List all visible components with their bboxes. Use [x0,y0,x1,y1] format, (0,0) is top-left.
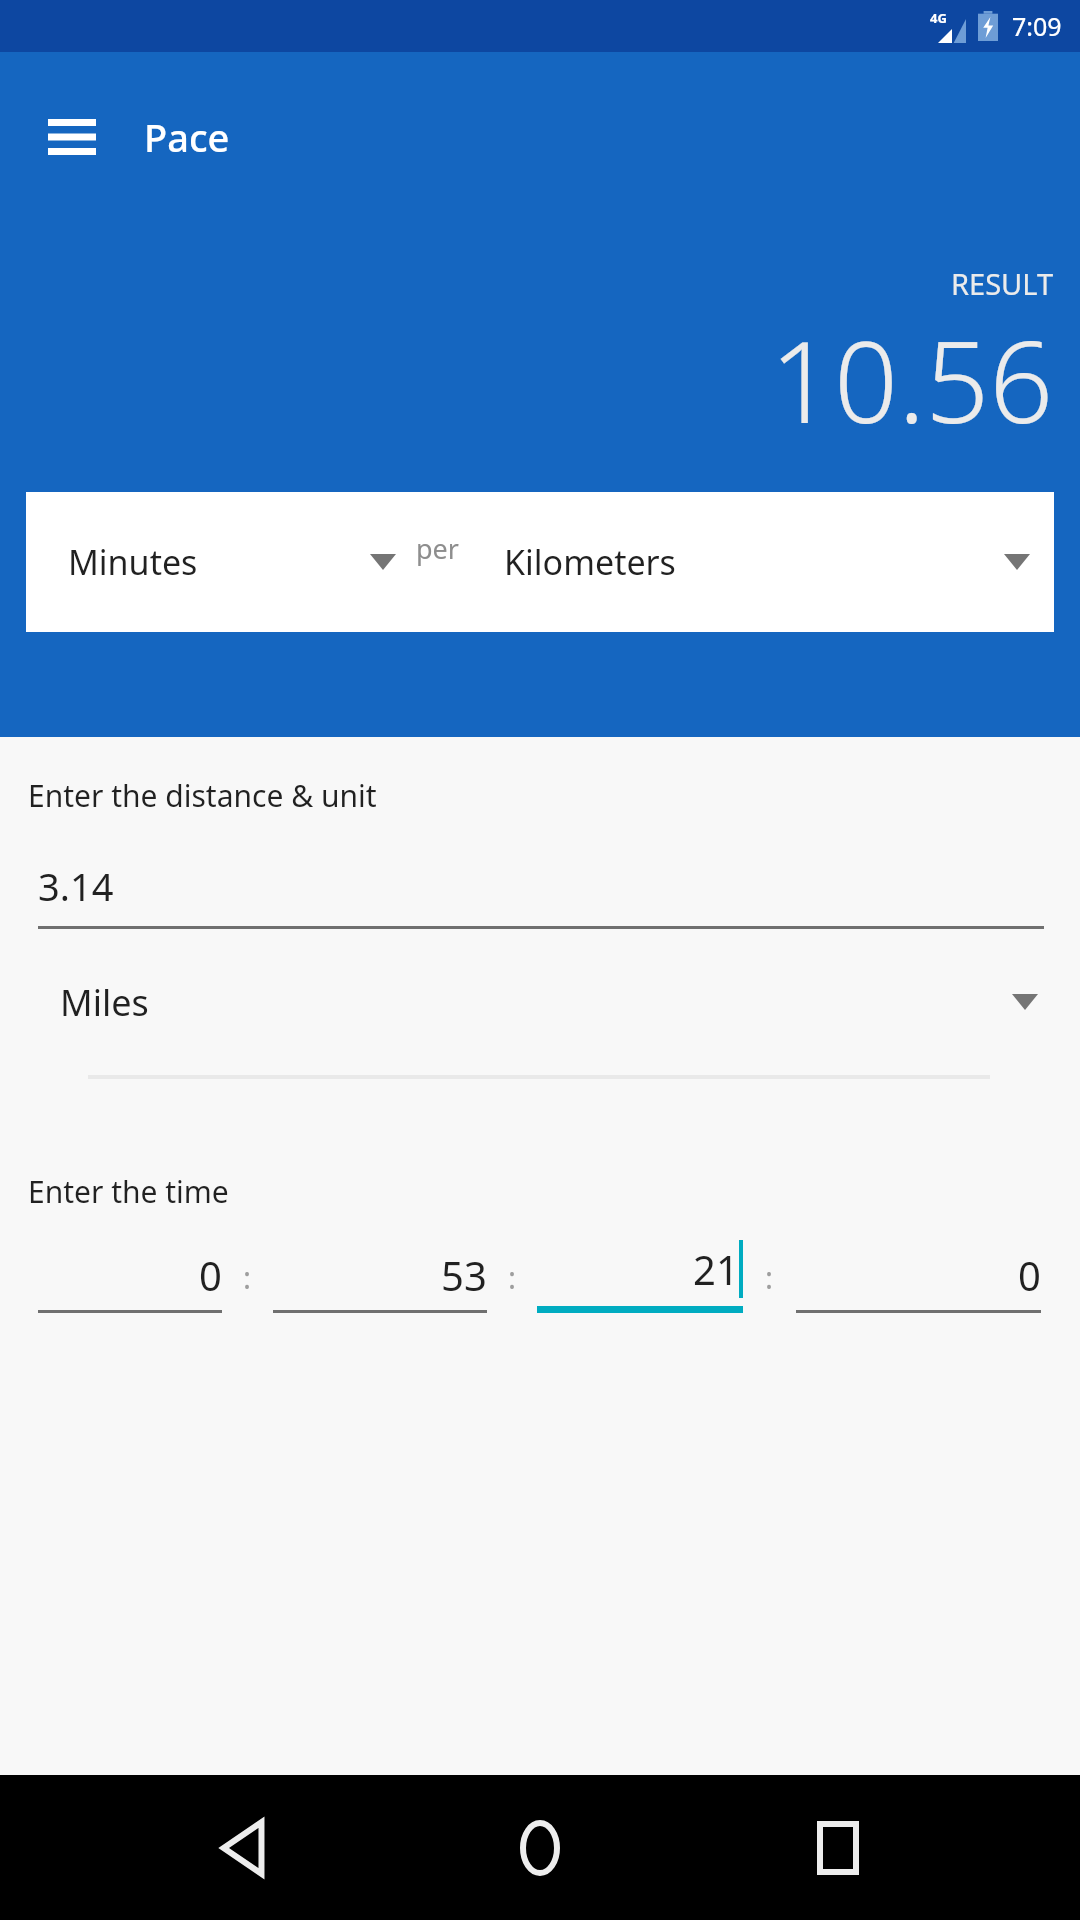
staticText: 53 [441,1248,487,1302]
staticText: : [508,1257,517,1298]
staticText: Minutes [68,539,198,585]
staticText: Kilometers [504,539,676,585]
staticText: Pace [144,111,230,163]
button[interactable]: Back [188,1793,298,1903]
staticText: 21 [693,1242,739,1296]
staticText: Enter the distance & unit [28,775,377,816]
staticText: 7:09 [1012,9,1062,43]
staticText: Enter the time [28,1171,229,1212]
staticText: : [243,1257,252,1298]
staticText: 4G [930,9,947,27]
staticText: RESULT [951,264,1054,303]
button[interactable]: 0 [38,1248,222,1313]
button[interactable]: Miles [0,967,1080,1037]
staticText: Miles [60,978,149,1027]
staticText: 0 [199,1248,222,1302]
staticText: 10.56 [770,303,1054,456]
staticText: per [416,530,462,567]
button[interactable]: Home [485,1793,595,1903]
button[interactable]: Open navigation drawer [30,95,114,179]
staticText: : [765,1257,774,1298]
button[interactable]: 0 [796,1248,1041,1313]
button[interactable]: 21 [537,1240,743,1313]
button[interactable]: Kilometers [482,492,1054,632]
button[interactable]: Recent apps [783,1793,893,1903]
button[interactable]: Minutes [26,492,416,632]
staticText: 0 [1018,1248,1041,1302]
staticText: 3.14 [38,860,114,912]
button[interactable]: 3.14 [38,860,1044,929]
button[interactable]: 53 [273,1248,487,1313]
